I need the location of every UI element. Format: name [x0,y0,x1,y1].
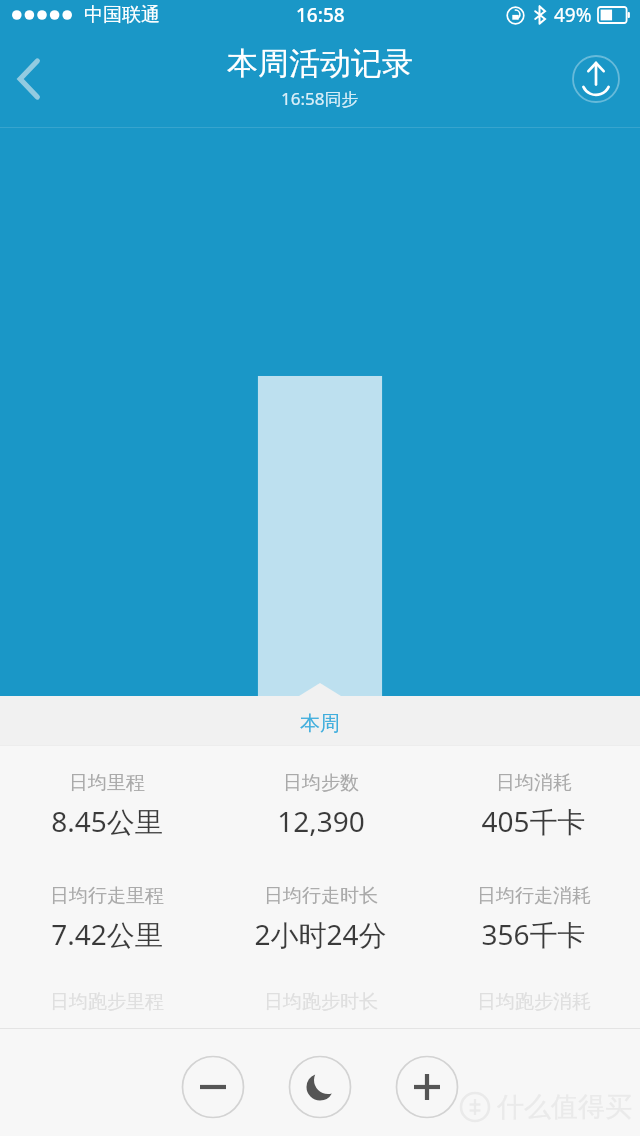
button[interactable]: Decrease [181,1055,245,1119]
button[interactable]: Back [0,43,58,115]
button[interactable]: 日均跑步消耗 [427,972,640,1032]
staticText: 日均消耗 [496,771,572,795]
staticText: 12,390 [277,802,365,840]
button[interactable]: 日均行走时长 [214,864,427,972]
staticText: 日均行走时长 [264,884,378,908]
staticText: 日均行走里程 [50,884,164,908]
staticText: 7.42公里 [51,915,163,953]
staticText: 日均里程 [69,771,145,795]
staticText: 日均跑步时长 [264,990,378,1014]
staticText: 8.45公里 [51,802,163,840]
staticText: 356千卡 [481,915,586,953]
staticText: 本周 [300,711,340,736]
button[interactable]: Increase [395,1055,459,1119]
button[interactable]: Sleep mode [288,1055,352,1119]
staticText: 日均步数 [283,771,359,795]
button[interactable]: 日均步数 [214,746,427,864]
staticText: 16:58同步 [281,87,359,110]
button[interactable]: 日均行走消耗 [427,864,640,972]
staticText: 中国联通 [84,3,160,27]
staticText: 405千卡 [481,802,586,840]
button[interactable]: 日均行走里程 [0,864,214,972]
staticText: 日均跑步里程 [50,990,164,1014]
button[interactable]: Sync [568,51,624,107]
staticText: 日均行走消耗 [477,884,591,908]
staticText: 本周活动记录 [227,44,413,83]
staticText: 16:58 [296,2,345,28]
staticText: 日均跑步消耗 [477,990,591,1014]
staticText: 49% [554,2,592,28]
button[interactable]: 日均里程 [0,746,214,864]
button[interactable]: 日均跑步时长 [214,972,427,1032]
button[interactable]: 日均消耗 [427,746,640,864]
button[interactable]: 日均跑步里程 [0,972,214,1032]
staticText: 什么值得买 [497,1090,632,1124]
staticText: 2小时24分 [254,915,387,953]
